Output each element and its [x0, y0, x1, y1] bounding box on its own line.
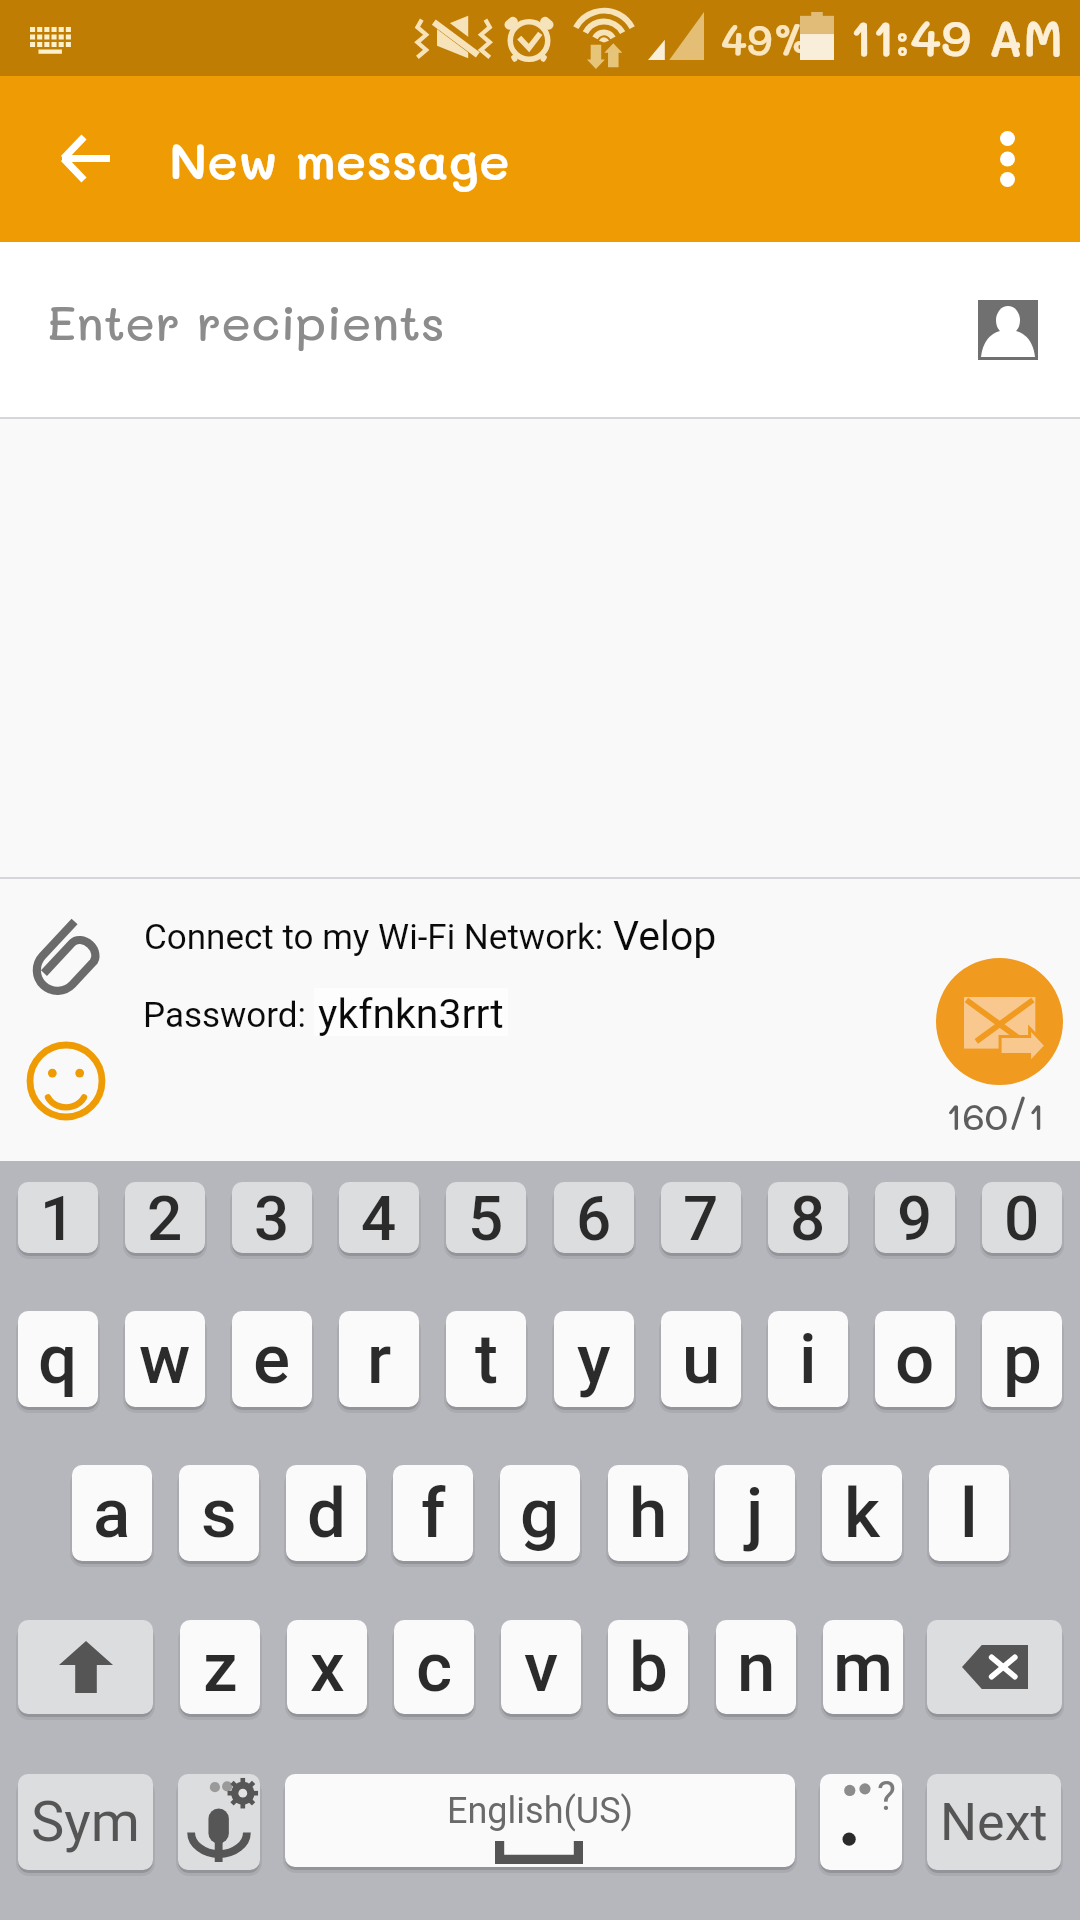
staticText: l — [960, 1473, 978, 1554]
button[interactable]: 8 — [768, 1182, 848, 1253]
staticText: g — [520, 1473, 560, 1554]
staticText: 6 — [576, 1182, 612, 1253]
button[interactable]: g — [500, 1465, 580, 1561]
staticText: 160/1 — [946, 1091, 1045, 1139]
button[interactable]: w — [125, 1311, 205, 1407]
button[interactable]: Space — [285, 1774, 795, 1867]
staticText: ? — [877, 1774, 896, 1820]
staticText: e — [253, 1319, 291, 1400]
button[interactable]: x — [287, 1620, 367, 1714]
staticText: s — [201, 1473, 237, 1554]
staticText: 1 — [40, 1182, 76, 1253]
button[interactable]: j — [715, 1465, 795, 1561]
staticText: 8 — [790, 1182, 826, 1253]
staticText: d — [307, 1473, 346, 1554]
staticText: n — [737, 1627, 776, 1708]
staticText: y — [577, 1319, 611, 1400]
button[interactable]: z — [180, 1620, 260, 1714]
button[interactable]: m — [823, 1620, 903, 1714]
staticText: o — [895, 1319, 935, 1400]
button[interactable]: 4 — [339, 1182, 419, 1253]
staticText: u — [682, 1319, 721, 1400]
staticText: 4 — [361, 1182, 397, 1253]
staticText: 9 — [897, 1182, 933, 1253]
staticText: v — [524, 1627, 559, 1708]
staticText: Sym — [31, 1789, 140, 1855]
button[interactable]: h — [608, 1465, 688, 1561]
button[interactable]: 0 — [982, 1182, 1062, 1253]
button[interactable]: Next — [927, 1774, 1061, 1870]
staticText: h — [629, 1473, 668, 1554]
button[interactable]: i — [768, 1311, 848, 1407]
button[interactable]: Period — [820, 1774, 902, 1870]
button[interactable]: Sym — [18, 1774, 153, 1870]
staticText: Enter recipients — [47, 290, 445, 354]
staticText: Velop — [613, 912, 717, 960]
staticText: ykfnkn3rrt — [318, 990, 504, 1038]
button[interactable]: Voice input — [178, 1774, 260, 1870]
staticText: f — [421, 1473, 446, 1554]
button[interactable]: Backspace — [927, 1620, 1062, 1714]
staticText: t — [475, 1319, 498, 1400]
button[interactable]: Insert emoticon — [18, 1033, 114, 1129]
staticText: a — [93, 1473, 131, 1554]
button[interactable]: t — [446, 1311, 526, 1407]
button[interactable]: 3 — [232, 1182, 312, 1253]
button[interactable]: 5 — [446, 1182, 526, 1253]
staticText: 49% — [721, 11, 812, 66]
button[interactable]: More options — [945, 94, 1070, 224]
staticText: p — [1003, 1319, 1042, 1400]
button[interactable]: a — [72, 1465, 152, 1561]
staticText: k — [844, 1473, 881, 1554]
staticText: New message — [169, 126, 510, 192]
staticText: 5 — [468, 1182, 504, 1253]
button[interactable]: 9 — [875, 1182, 955, 1253]
staticText: x — [310, 1627, 345, 1708]
staticText: Password: — [143, 995, 307, 1036]
button[interactable]: Attach — [10, 905, 122, 1017]
button[interactable]: q — [18, 1311, 98, 1407]
button[interactable]: r — [339, 1311, 419, 1407]
button[interactable]: y — [554, 1311, 634, 1407]
staticText: z — [203, 1627, 238, 1708]
button[interactable]: n — [716, 1620, 796, 1714]
button[interactable]: Enter recipients — [0, 242, 1080, 417]
staticText: m — [833, 1627, 894, 1708]
staticText: 11:49 AM — [850, 5, 1064, 70]
button[interactable]: c — [394, 1620, 474, 1714]
button[interactable]: p — [982, 1311, 1062, 1407]
staticText: j — [746, 1473, 764, 1554]
staticText: 0 — [1004, 1182, 1040, 1253]
staticText: 7 — [683, 1182, 719, 1253]
staticText: b — [629, 1627, 668, 1708]
button[interactable]: s — [179, 1465, 259, 1561]
button[interactable]: u — [661, 1311, 741, 1407]
staticText: r — [367, 1319, 392, 1400]
staticText: q — [38, 1319, 78, 1400]
staticText: English(US) — [447, 1790, 634, 1832]
button[interactable]: 6 — [554, 1182, 634, 1253]
button[interactable]: f — [393, 1465, 473, 1561]
staticText: Next — [940, 1792, 1048, 1853]
button[interactable]: Shift — [18, 1620, 153, 1714]
button[interactable]: 1 — [18, 1182, 98, 1253]
button[interactable]: Send message — [936, 958, 1063, 1085]
staticText: 3 — [254, 1182, 290, 1253]
button[interactable]: o — [875, 1311, 955, 1407]
button[interactable]: l — [929, 1465, 1009, 1561]
button[interactable]: 2 — [125, 1182, 205, 1253]
button[interactable]: k — [822, 1465, 902, 1561]
staticText: Connect to my Wi-Fi Network: — [144, 917, 604, 958]
staticText: i — [799, 1319, 817, 1400]
button[interactable]: 7 — [661, 1182, 741, 1253]
button[interactable]: Add recipient from contacts — [978, 300, 1038, 360]
button[interactable]: Back — [20, 94, 150, 224]
staticText: 2 — [147, 1182, 183, 1253]
staticText: c — [416, 1627, 453, 1708]
staticText: w — [139, 1319, 191, 1400]
button[interactable]: b — [608, 1620, 688, 1714]
button[interactable]: v — [501, 1620, 581, 1714]
button[interactable]: e — [232, 1311, 312, 1407]
button[interactable]: d — [286, 1465, 366, 1561]
